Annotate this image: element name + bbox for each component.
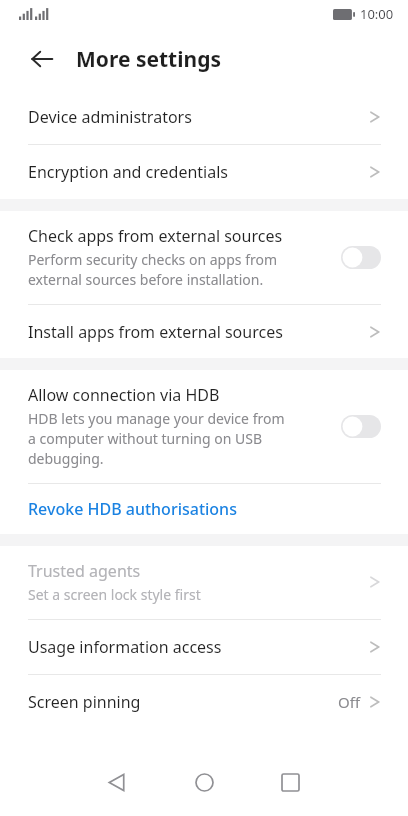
button[interactable]: Device administrators [0,90,408,144]
staticText: Set a screen lock style first [28,585,201,604]
staticText: Encryption and credentials [28,161,368,183]
staticText: Trusted agents [28,560,141,582]
button[interactable]: Recent apps [260,752,320,812]
staticText: 10:00 [360,5,394,23]
button[interactable]: Screen pinning [0,675,408,729]
staticText: HDB lets you manage your device from a c… [28,409,285,468]
staticText: Allow connection via HDB [28,384,220,406]
button[interactable]: Home [174,752,234,812]
staticText: Revoke HDB authorisations [28,498,237,520]
staticText: Check apps from external sources [28,225,283,247]
button[interactable]: Toggle [341,415,381,438]
button[interactable]: Check apps from external sources [0,211,408,304]
staticText: Screen pinning [28,691,338,713]
staticText: Off [338,692,361,712]
button[interactable]: Trusted agents [0,546,408,619]
button[interactable]: Back [22,39,62,79]
button[interactable]: Revoke HDB authorisations [0,484,408,534]
button[interactable]: Back [86,752,146,812]
staticText: Usage information access [28,636,368,658]
button[interactable]: Encryption and credentials [0,145,408,199]
staticText: Device administrators [28,106,368,128]
staticText: Install apps from external sources [28,321,368,343]
staticText: More settings [76,45,221,74]
button[interactable]: Allow connection via HDB [0,370,408,483]
button[interactable]: Usage information access [0,620,408,674]
staticText: Perform security checks on apps from ext… [28,250,278,289]
button[interactable]: Install apps from external sources [0,305,408,358]
button[interactable]: Toggle [341,246,381,269]
